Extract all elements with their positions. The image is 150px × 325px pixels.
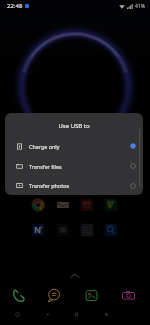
button[interactable]: Back	[12, 309, 23, 320]
button[interactable]: Phone	[9, 286, 27, 304]
button[interactable]: Open app drawer	[68, 270, 82, 280]
button[interactable]: Charge only	[5, 136, 143, 156]
staticText: Transfer photos	[29, 182, 70, 189]
button[interactable]: Camera	[119, 286, 137, 304]
staticText: 22:48	[7, 2, 23, 10]
button[interactable]: Search	[104, 223, 118, 237]
button[interactable]: Play Store	[104, 198, 118, 212]
staticText: Transfer files	[29, 163, 62, 170]
button[interactable]: Gallery	[82, 286, 100, 304]
button[interactable]: Transfer photos	[5, 176, 143, 195]
staticText: Use USB to	[5, 122, 143, 130]
button[interactable]: OneNote	[31, 223, 45, 237]
button[interactable]: Menu	[101, 309, 112, 320]
button[interactable]: Gmail	[56, 198, 70, 212]
button[interactable]: Home	[42, 309, 53, 320]
button[interactable]: Calculator	[80, 223, 94, 237]
button[interactable]: Photos	[80, 198, 94, 212]
staticText: 41%	[135, 3, 145, 10]
staticText: Charge only	[29, 143, 60, 150]
button[interactable]: Files	[56, 223, 70, 237]
button[interactable]: Chrome	[31, 198, 45, 212]
button[interactable]: Transfer files	[5, 156, 143, 176]
button[interactable]: Messages	[44, 286, 62, 304]
button[interactable]: Recents	[71, 309, 82, 320]
